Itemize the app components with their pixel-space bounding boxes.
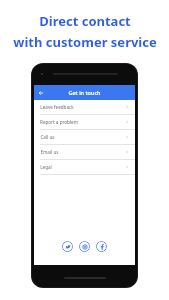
staticText: Legal	[40, 164, 52, 170]
staticText: Direct contact	[39, 12, 131, 30]
button[interactable]: Leave feedback	[34, 100, 135, 114]
staticText: Get in touch	[68, 89, 101, 96]
staticText: Report a problem	[40, 119, 78, 125]
button[interactable]: Email us	[34, 145, 135, 159]
button[interactable]: Back	[34, 85, 48, 100]
button[interactable]: Facebook	[96, 241, 107, 252]
staticText: Call us	[40, 134, 55, 140]
staticText: with customer service	[13, 33, 157, 51]
button[interactable]: Twitter	[62, 241, 73, 252]
button[interactable]: Instagram	[79, 241, 90, 252]
button[interactable]: Legal	[34, 160, 135, 174]
staticText: Leave feedback	[40, 104, 74, 110]
button[interactable]: Report a problem	[34, 115, 135, 129]
button[interactable]: Call us	[34, 130, 135, 144]
staticText: Email us	[40, 149, 59, 155]
